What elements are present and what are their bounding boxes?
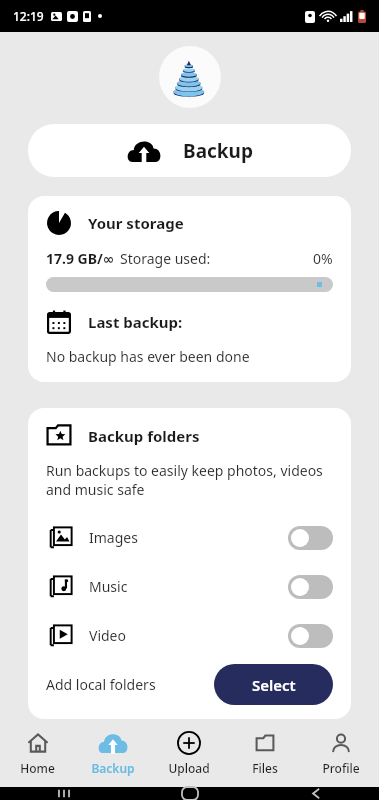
button[interactable]: Recent apps bbox=[55, 787, 73, 800]
button[interactable]: Backup bbox=[75, 719, 151, 787]
button[interactable]: Video bbox=[46, 611, 333, 660]
staticText: Files bbox=[252, 760, 278, 776]
staticText: Music bbox=[89, 577, 128, 596]
staticText: Backup folders bbox=[88, 426, 200, 446]
staticText: Last backup: bbox=[88, 312, 183, 332]
button[interactable]: Home bbox=[0, 719, 75, 787]
button[interactable]: App logo bbox=[159, 46, 221, 108]
button[interactable]: Files bbox=[227, 719, 303, 787]
staticText: Profile bbox=[322, 760, 360, 776]
button[interactable]: Upload bbox=[151, 719, 227, 787]
staticText: Video bbox=[89, 626, 126, 645]
staticText: Upload bbox=[168, 760, 210, 776]
staticText: Backup bbox=[183, 138, 253, 164]
staticText: Images bbox=[89, 528, 138, 547]
staticText: Backup bbox=[91, 760, 135, 776]
staticText: 12:19 bbox=[13, 8, 44, 24]
staticText: Select bbox=[252, 675, 296, 695]
button[interactable]: Images bbox=[46, 513, 333, 562]
staticText: Run backups to easily keep photos, video… bbox=[46, 461, 333, 499]
staticText: Storage used: bbox=[120, 249, 211, 268]
staticText: 0% bbox=[313, 249, 333, 268]
staticText: 17.9 GB/∞ bbox=[46, 249, 115, 268]
staticText: Add local folders bbox=[46, 675, 156, 694]
button[interactable]: Profile bbox=[303, 719, 379, 787]
button[interactable]: Home bbox=[182, 787, 198, 800]
staticText: Your storage bbox=[88, 213, 184, 233]
button[interactable]: Music bbox=[46, 562, 333, 611]
button[interactable]: Back bbox=[308, 787, 324, 800]
button[interactable]: Select bbox=[214, 664, 333, 705]
staticText: No backup has ever been done bbox=[46, 347, 250, 366]
staticText: Home bbox=[20, 760, 55, 776]
button[interactable]: Backup bbox=[28, 124, 351, 177]
